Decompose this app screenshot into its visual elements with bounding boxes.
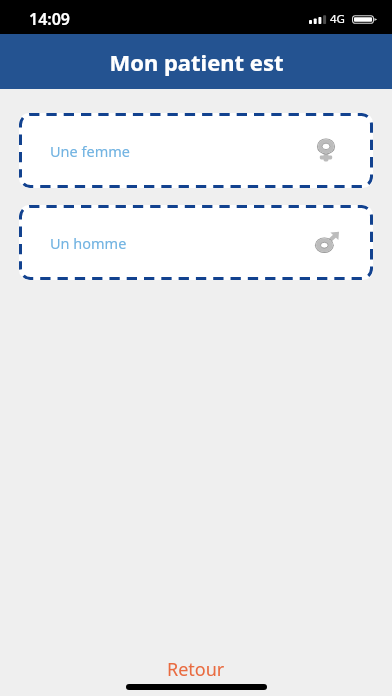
- button[interactable]: Une femme: [19, 113, 373, 188]
- staticText: Mon patient est: [109, 47, 284, 77]
- staticText: Une femme: [50, 141, 130, 161]
- other: Femme: [317, 139, 335, 162]
- staticText: 14:09: [29, 8, 71, 30]
- staticText: Retour: [167, 657, 225, 682]
- staticText: Un homme: [50, 233, 127, 253]
- button[interactable]: Un homme: [19, 205, 373, 280]
- staticText: 4G: [330, 11, 345, 27]
- button[interactable]: Retour: [0, 637, 392, 684]
- other: Homme: [315, 232, 339, 253]
